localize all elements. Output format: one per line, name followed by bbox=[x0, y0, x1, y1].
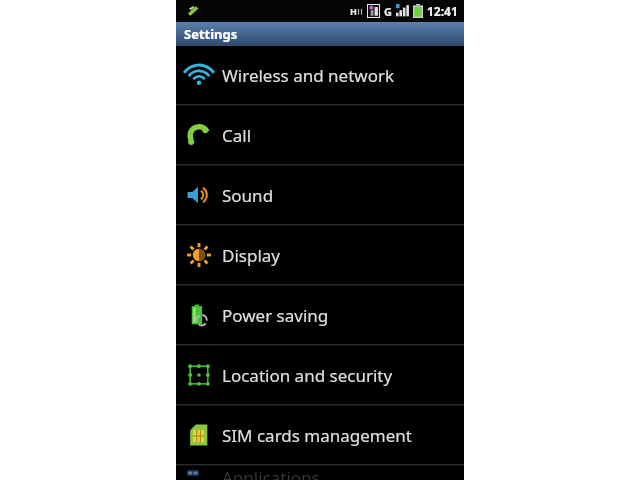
staticText: Call bbox=[222, 124, 252, 147]
staticText: SIM cards management bbox=[222, 424, 412, 447]
staticText: Power saving bbox=[222, 304, 329, 327]
staticText: G bbox=[384, 4, 392, 19]
button[interactable]: Location and security bbox=[176, 346, 464, 404]
staticText: Sound bbox=[222, 184, 274, 207]
staticText: Display bbox=[222, 244, 280, 267]
button[interactable]: SIM cards management bbox=[176, 406, 464, 464]
button[interactable]: Applications bbox=[176, 466, 464, 480]
staticText: Wireless and network bbox=[222, 64, 395, 87]
button[interactable]: Sound bbox=[176, 166, 464, 224]
button[interactable]: Display bbox=[176, 226, 464, 284]
staticText: Location and security bbox=[222, 364, 393, 387]
staticText: H bbox=[350, 5, 357, 17]
button[interactable]: Power saving bbox=[176, 286, 464, 344]
staticText: Settings bbox=[184, 25, 238, 43]
button[interactable]: Wireless and network bbox=[176, 46, 464, 104]
staticText: 12:41 bbox=[427, 3, 458, 19]
button[interactable]: Call bbox=[176, 106, 464, 164]
staticText: Applications bbox=[222, 466, 320, 480]
